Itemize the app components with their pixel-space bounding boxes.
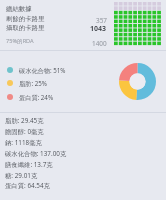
button[interactable]: 脂肪: 25% (0, 77, 166, 89)
button[interactable]: 鈉: 1118毫克 (0, 137, 166, 148)
button[interactable]: 蛋白質: 64.54克 (0, 180, 166, 191)
staticText: 碳水化合物: 137.00克 (5, 149, 67, 158)
staticText: 膳食纖維: 13.7克 (5, 160, 53, 169)
staticText: 脂肪: 29.45克 (5, 116, 44, 125)
button[interactable]: 碳水化合物: 51% (0, 64, 166, 76)
staticText: 攝取的卡路里 (6, 24, 45, 32)
staticText: 脂肪: 25% (19, 79, 47, 87)
staticText: 剩餘的卡路里 (6, 15, 45, 23)
button[interactable]: 脂肪: 29.45克 (0, 115, 166, 126)
staticText: 75%的RDA (6, 37, 34, 45)
staticText: 鈉: 1118毫克 (5, 138, 42, 147)
button[interactable]: 碳水化合物: 137.00克 (0, 148, 166, 159)
staticText: 蛋白質: 24% (19, 93, 54, 101)
staticText: 1043 (90, 24, 107, 34)
staticText: 357 (96, 16, 107, 25)
staticText: 1400 (92, 39, 107, 48)
staticText: 總結數據 (6, 5, 32, 13)
staticText: 糖: 29.01克 (5, 171, 38, 180)
staticText: 碳水化合物: 51% (19, 66, 66, 74)
button[interactable]: 膳食纖維: 13.7克 (0, 159, 166, 170)
staticText: 膽固醇: 0毫克 (5, 127, 44, 136)
button[interactable]: 膽固醇: 0毫克 (0, 126, 166, 137)
staticText: 蛋白質: 64.54克 (5, 181, 50, 190)
button[interactable]: 蛋白質: 24% (0, 91, 166, 103)
button[interactable]: 糖: 29.01克 (0, 170, 166, 181)
